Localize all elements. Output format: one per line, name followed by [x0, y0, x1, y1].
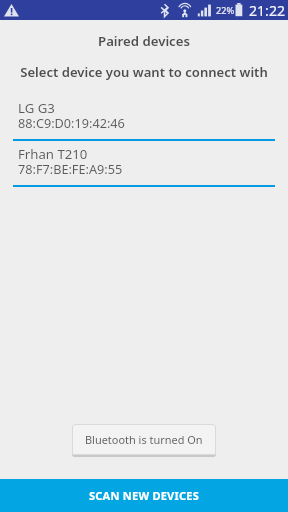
staticText: 78:F7:BE:FE:A9:55 [18, 160, 123, 177]
button[interactable]: Frhan T210 [0, 145, 288, 191]
staticText: LG G3 [18, 99, 55, 117]
button[interactable]: Bluetooth is turned On [72, 424, 216, 455]
staticText: 88:C9:D0:19:42:46 [18, 114, 125, 131]
staticText: 21:22 [249, 1, 286, 20]
staticText: Bluetooth is turned On [85, 432, 203, 447]
other: Status bar [0, 0, 288, 20]
staticText: Paired devices [98, 32, 190, 50]
button[interactable]: SCAN NEW DEVICES [0, 479, 288, 512]
staticText: 22% [216, 4, 235, 16]
staticText: SCAN NEW DEVICES [89, 488, 200, 503]
staticText: Frhan T210 [18, 145, 88, 163]
button[interactable]: LG G3 [0, 99, 288, 145]
staticText: Select device you want to connect with [20, 63, 268, 81]
